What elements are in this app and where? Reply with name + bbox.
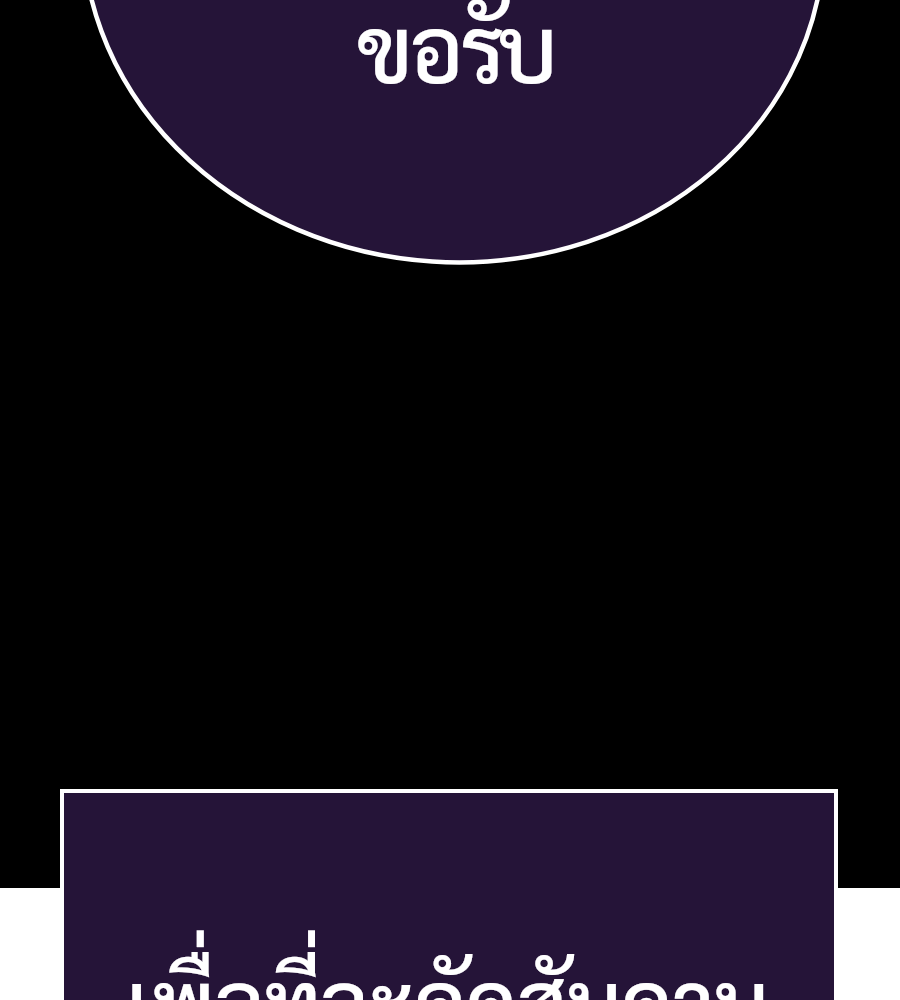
button[interactable] [60, 789, 838, 1000]
button[interactable]: ขอรับ [357, 0, 555, 105]
staticText: เพื่อที่จะคัดสันดาน [126, 942, 770, 1000]
